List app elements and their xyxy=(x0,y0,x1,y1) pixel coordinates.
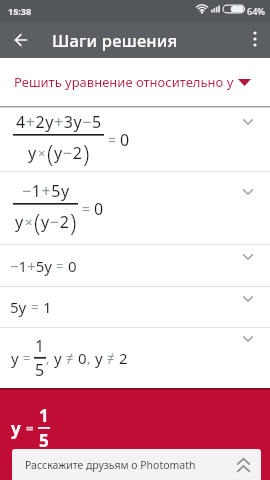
staticText: × xyxy=(38,144,46,162)
staticText: , xyxy=(46,349,50,367)
staticText: = xyxy=(82,199,91,218)
staticText: 0 xyxy=(120,129,130,151)
button[interactable]: 5y xyxy=(0,287,270,327)
staticText: −1+5y xyxy=(10,256,56,276)
staticText: y−2 xyxy=(54,142,83,164)
staticText: ( xyxy=(47,137,54,168)
staticText: 5 xyxy=(35,359,45,381)
button[interactable]: Расскажите друзьям о Photomath xyxy=(12,449,261,480)
staticText: 4+2y+3y−5 xyxy=(16,111,102,133)
staticText: , xyxy=(87,349,91,367)
staticText: y xyxy=(95,348,107,368)
staticText: ) xyxy=(83,137,90,168)
staticText: y xyxy=(11,348,23,368)
staticText: × xyxy=(25,213,33,231)
staticText: y−2 xyxy=(41,211,70,233)
button[interactable]: Решить уравнение относительно у xyxy=(0,58,270,106)
staticText: 0 xyxy=(74,348,87,368)
staticText: ) xyxy=(70,206,77,237)
button[interactable]: 4+2y+3y−5 xyxy=(0,108,270,171)
staticText: 5y xyxy=(10,297,31,317)
button[interactable] xyxy=(15,34,27,46)
staticText: = xyxy=(23,349,31,367)
staticText: = xyxy=(31,298,39,316)
staticText: Расскажите друзьям о Photomath xyxy=(25,458,196,472)
staticText: = xyxy=(26,419,34,437)
staticText: ≠ xyxy=(107,349,115,367)
staticText: 2 xyxy=(115,348,128,368)
staticText: = xyxy=(56,257,64,275)
button[interactable]: y xyxy=(0,328,270,388)
button[interactable]: −1+5y xyxy=(0,172,270,244)
staticText: 1 xyxy=(35,335,45,357)
staticText: ( xyxy=(34,206,41,237)
button[interactable]: −1+5y xyxy=(0,245,270,286)
button[interactable] xyxy=(253,31,257,47)
staticText: −1+5y xyxy=(22,180,70,202)
staticText: 64% xyxy=(247,5,265,17)
staticText: y xyxy=(54,348,66,368)
staticText: y xyxy=(15,211,24,233)
staticText: Решить уравнение относительно у xyxy=(14,73,234,91)
staticText: 0 xyxy=(94,198,104,220)
staticText: 0 xyxy=(64,256,77,276)
staticText: 1 xyxy=(39,297,52,317)
staticText: y xyxy=(11,417,26,440)
staticText: = xyxy=(108,130,117,149)
staticText: Шаги решения xyxy=(52,29,178,51)
staticText: ≠ xyxy=(66,349,74,367)
staticText: y xyxy=(28,142,37,164)
staticText: 15:38 xyxy=(8,5,32,17)
staticText: 5 xyxy=(39,429,49,452)
staticText: 1 xyxy=(39,404,49,427)
